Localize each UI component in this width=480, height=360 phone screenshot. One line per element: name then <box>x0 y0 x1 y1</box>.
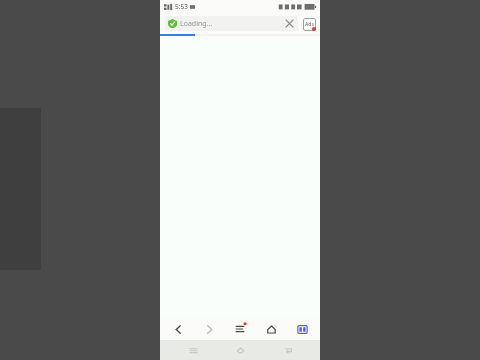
button[interactable]: Recents <box>178 340 208 360</box>
staticText: Ads <box>305 21 314 28</box>
button[interactable]: Tabs <box>289 318 315 340</box>
button[interactable]: Loading... <box>165 16 298 31</box>
button[interactable]: Menu <box>227 318 253 340</box>
button[interactable]: Forward <box>196 318 222 340</box>
button[interactable]: Ad blocker <box>301 16 317 32</box>
staticText: Loading... <box>180 19 213 29</box>
button[interactable]: Back <box>165 318 191 340</box>
staticText: 5:53 <box>175 2 188 11</box>
button[interactable]: Home <box>225 340 255 360</box>
button[interactable]: Stop loading <box>284 18 295 29</box>
button[interactable]: Home <box>258 318 284 340</box>
button[interactable]: Back <box>273 340 303 360</box>
